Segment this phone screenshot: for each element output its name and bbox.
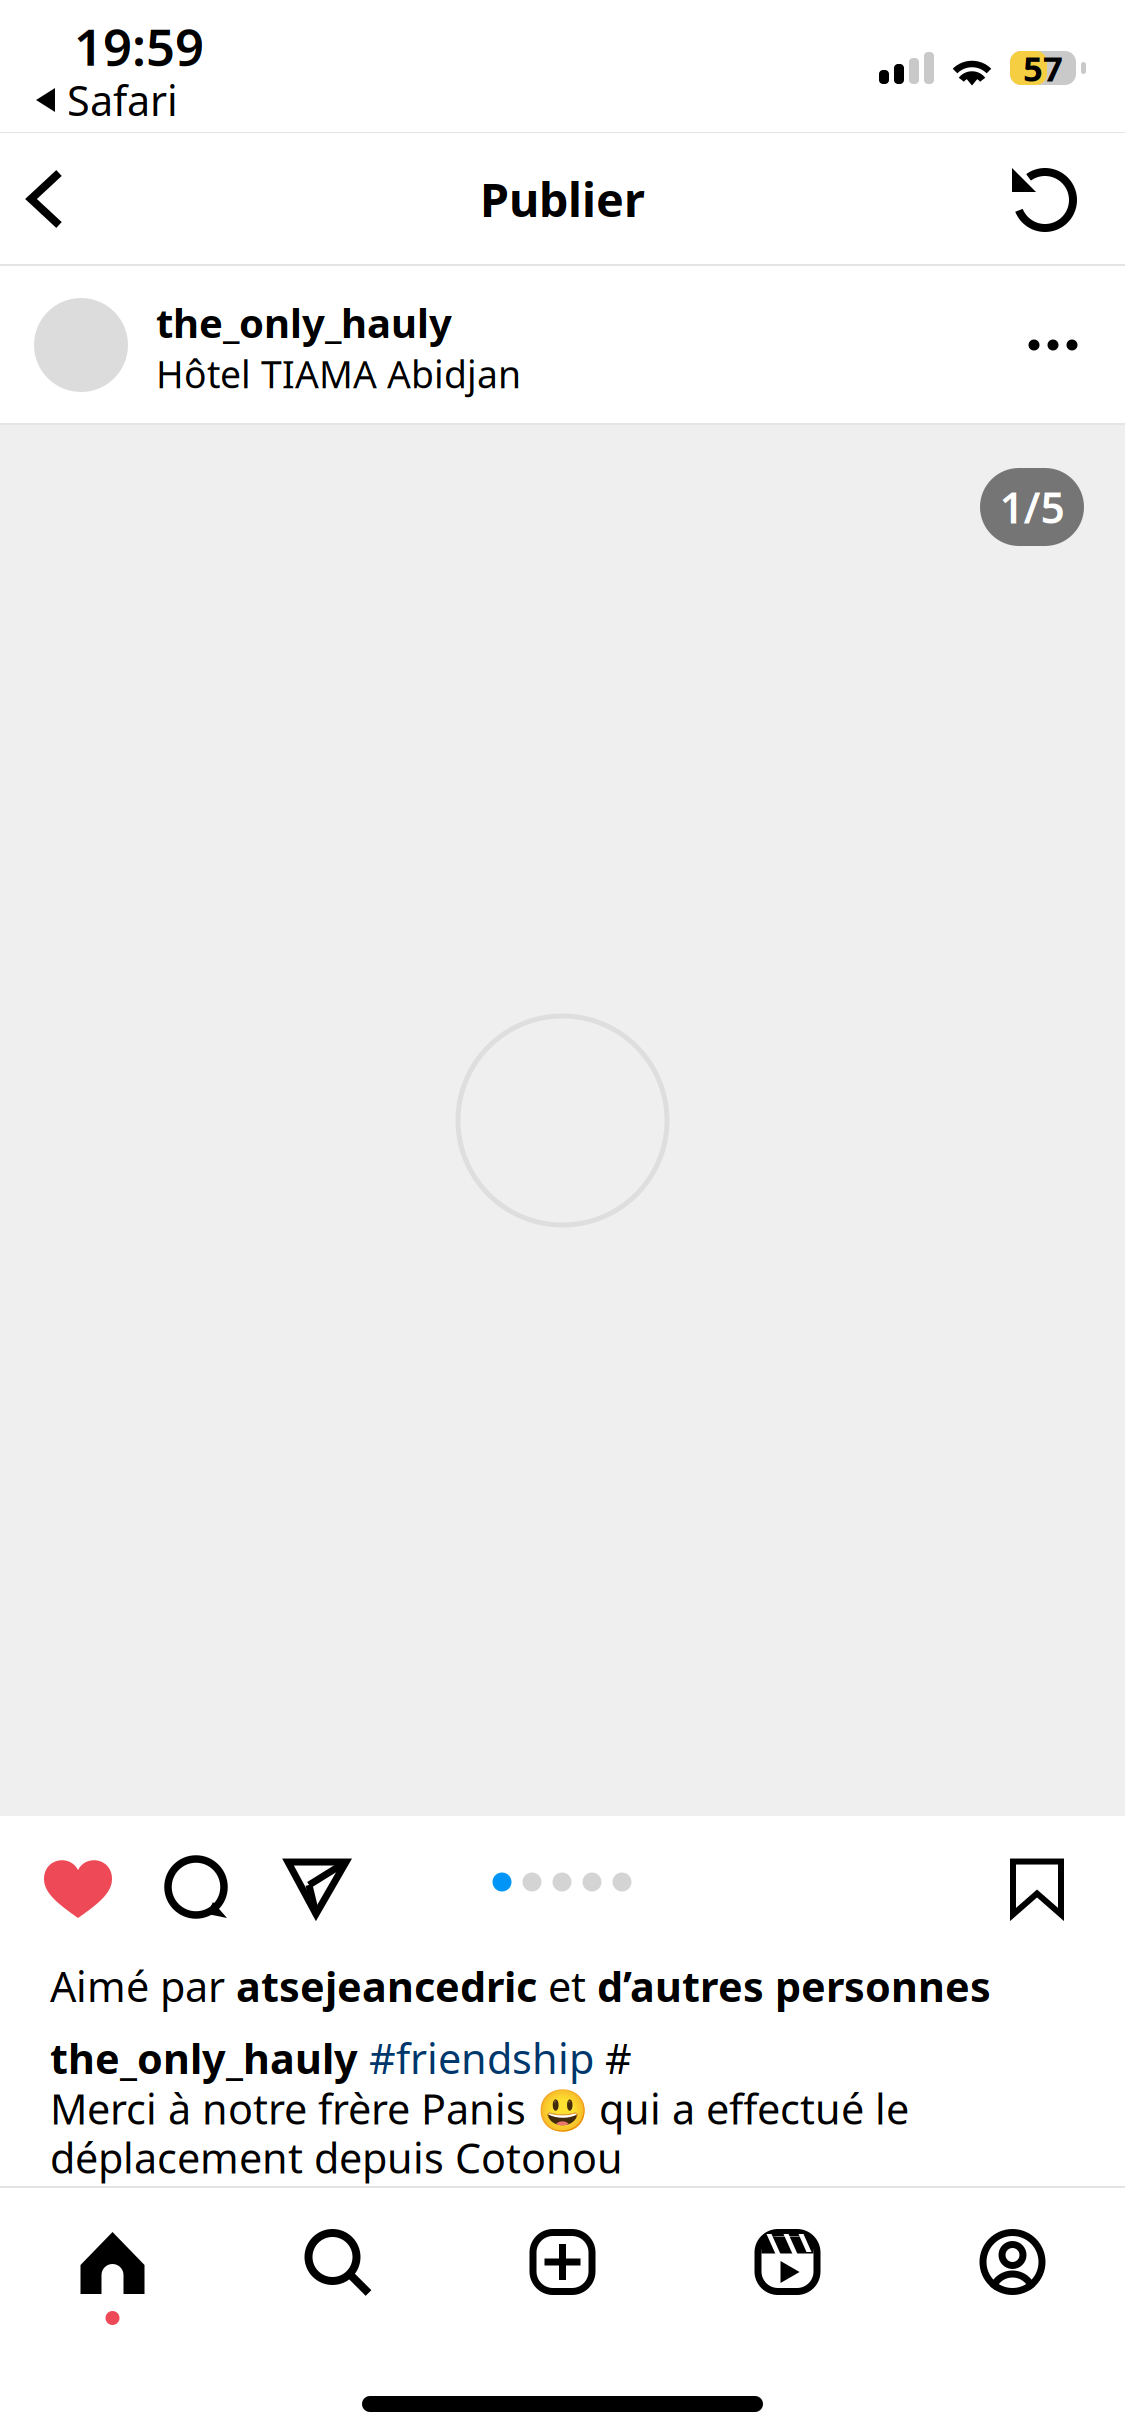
- staticText: déplacement depuis Cotonou: [50, 2130, 623, 2185]
- button[interactable]: Back: [0, 133, 105, 265]
- button[interactable]: More options: [1003, 295, 1103, 395]
- button[interactable]: Reels: [675, 2229, 900, 2349]
- button[interactable]: Create: [450, 2229, 675, 2349]
- staticText: Merci à notre frère Panis 😃 qui a effect…: [50, 2081, 909, 2136]
- staticText: 57: [1023, 45, 1063, 91]
- button[interactable]: the_only_hauly: [34, 295, 521, 395]
- staticText: Publier: [480, 168, 645, 230]
- staticText: Aimé par atsejeancedric et d’autres pers…: [50, 1959, 991, 2013]
- staticText: Safari: [67, 73, 178, 127]
- staticText: #: [594, 2031, 632, 2085]
- button[interactable]: Comment: [142, 1833, 254, 1943]
- button[interactable]: Like: [22, 1833, 134, 1943]
- button[interactable]: Save: [981, 1833, 1093, 1943]
- button[interactable]: Home: [0, 2229, 225, 2349]
- staticText: Hôtel TIAMA Abidjan: [156, 349, 521, 399]
- button[interactable]: Profile: [900, 2229, 1125, 2349]
- button[interactable]: Search: [225, 2229, 450, 2349]
- staticText: 19:59: [74, 12, 204, 80]
- button[interactable]: Share: [261, 1833, 373, 1943]
- staticText: the_only_hauly: [50, 2031, 369, 2085]
- button[interactable]: Refresh: [981, 133, 1101, 265]
- staticText: 1/5: [999, 479, 1064, 535]
- staticText: the_only_hauly: [156, 296, 452, 349]
- staticText: #friendship: [369, 2031, 594, 2085]
